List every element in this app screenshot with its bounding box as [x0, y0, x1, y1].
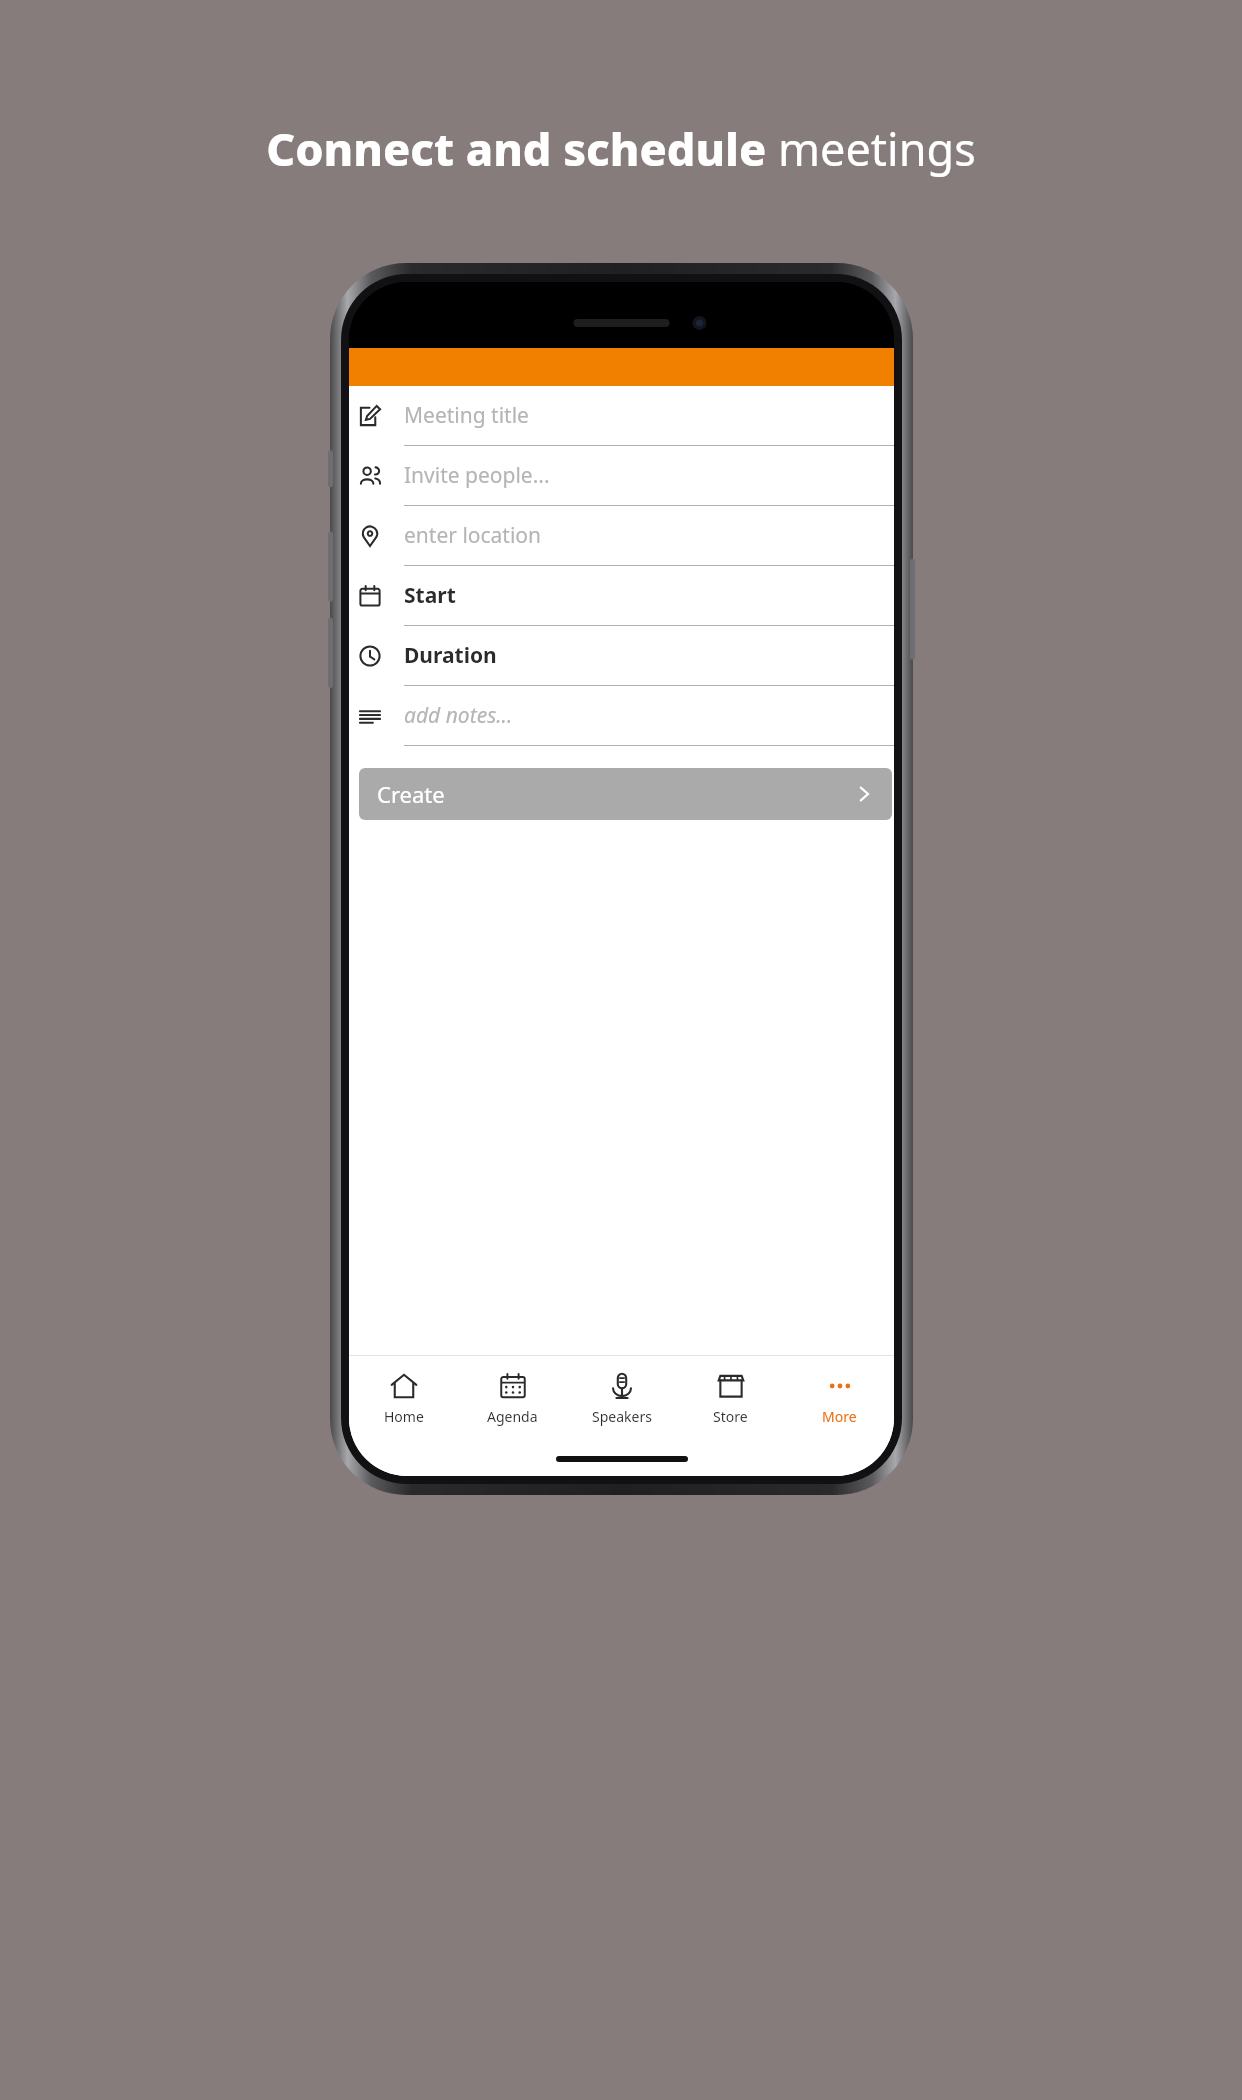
- staticText: More: [822, 1407, 857, 1426]
- staticText: Invite people...: [404, 461, 550, 490]
- button[interactable]: Start: [349, 566, 894, 626]
- staticText: Agenda: [487, 1407, 538, 1426]
- button[interactable]: Home: [349, 1356, 458, 1442]
- staticText: Speakers: [592, 1407, 652, 1426]
- button[interactable]: More: [785, 1356, 894, 1442]
- staticText: Create: [377, 779, 445, 809]
- button[interactable]: Duration: [349, 626, 894, 686]
- button[interactable]: Enter location: [349, 506, 894, 566]
- staticText: Home: [384, 1407, 424, 1426]
- staticText: add notes...: [404, 701, 513, 730]
- staticText: Duration: [404, 641, 497, 670]
- staticText: Connect and schedule meetings: [266, 118, 976, 179]
- staticText: Meeting title: [404, 401, 529, 430]
- staticText: Start: [404, 581, 456, 610]
- button[interactable]: Create: [359, 768, 892, 820]
- button[interactable]: Add notes: [349, 686, 894, 746]
- button[interactable]: Meeting title: [349, 386, 894, 446]
- button[interactable]: Invite people: [349, 446, 894, 506]
- button[interactable]: Store: [676, 1356, 785, 1442]
- staticText: Store: [713, 1407, 748, 1426]
- button[interactable]: Agenda: [458, 1356, 567, 1442]
- staticText: enter location: [404, 521, 542, 550]
- button[interactable]: Speakers: [567, 1356, 676, 1442]
